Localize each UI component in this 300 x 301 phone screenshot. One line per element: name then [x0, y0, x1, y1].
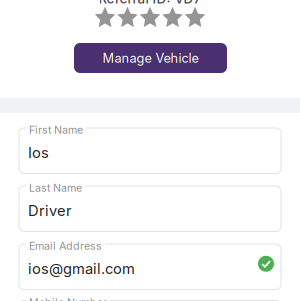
staticText: Referral ID: VD7: [98, 0, 201, 7]
staticText: Ios: [28, 144, 49, 162]
staticText: Email Address: [29, 239, 102, 252]
staticText: Last Name: [29, 181, 82, 194]
staticText: Manage Vehicle: [102, 50, 198, 66]
staticText: ios@gmail.com: [28, 260, 135, 278]
button[interactable]: Manage Vehicle: [74, 43, 227, 73]
staticText: Mobile Number: [29, 296, 107, 301]
staticText: Driver: [28, 202, 72, 220]
staticText: First Name: [29, 123, 83, 136]
